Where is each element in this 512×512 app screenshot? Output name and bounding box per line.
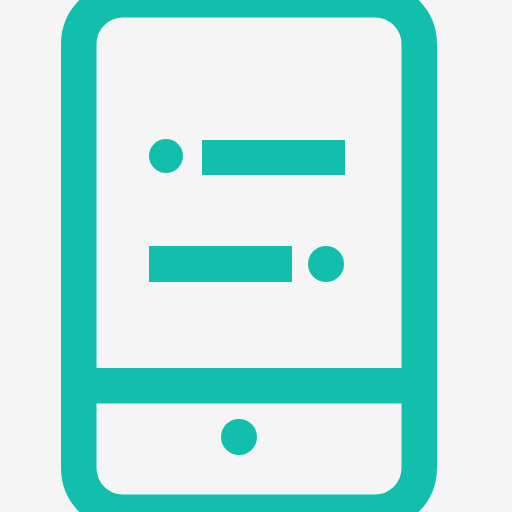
button[interactable]: Tablet device with content lines <box>0 0 512 512</box>
